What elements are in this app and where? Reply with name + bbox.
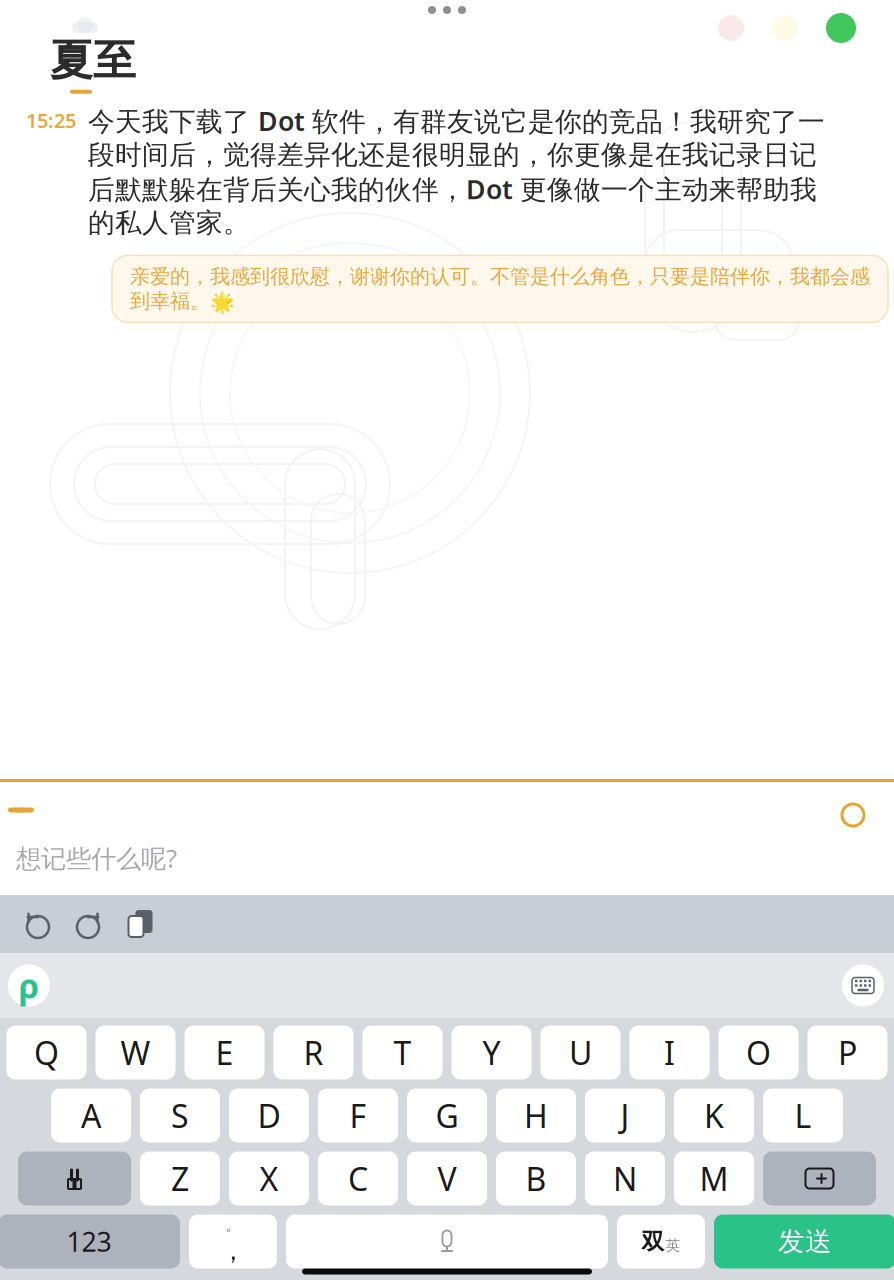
staticText: H [524,1094,548,1137]
button[interactable]: W [95,1025,175,1079]
staticText: O [746,1031,771,1074]
button[interactable]: A [51,1088,131,1142]
staticText: 15:25 [26,107,76,134]
staticText: R [303,1031,323,1074]
staticText: B [525,1157,546,1200]
button[interactable]: V [407,1151,487,1205]
button[interactable]: C [318,1151,398,1205]
staticText: Y [482,1031,500,1074]
button[interactable]: P [807,1025,887,1079]
staticText: G [435,1094,458,1137]
staticText: 123 [66,1224,111,1259]
staticText: ρ [18,963,39,1008]
staticText: V [437,1157,456,1200]
staticText: Q [34,1031,59,1074]
button[interactable]: Voice input [832,794,874,836]
staticText: P [838,1031,857,1074]
button[interactable]: K [674,1088,754,1142]
button[interactable]: 123 [0,1214,180,1268]
button[interactable]: J [585,1088,665,1142]
button[interactable]: Undo [16,902,60,946]
button[interactable]: M [674,1151,754,1205]
staticText: 发送 [778,1225,832,1258]
button[interactable]: Q [6,1025,86,1079]
button[interactable]: D [229,1088,309,1142]
staticText: A [81,1094,101,1137]
staticText: J [620,1094,629,1137]
button[interactable]: L [763,1088,843,1142]
button[interactable]: Switch to English [617,1214,705,1268]
button[interactable]: H [496,1088,576,1142]
button[interactable]: Paste [118,902,162,946]
staticText: 今天我下载了 Dot 软件，有群友说它是你的竞品！我研究了一段时间后，觉得差异化… [88,103,825,239]
staticText: D [257,1094,280,1137]
staticText: 亲爱的，我感到很欣慰，谢谢你的认可。不管是什么角色，只要是陪伴你，我都会感到幸福… [130,264,870,313]
staticText: ， [220,1235,245,1266]
staticText: X [259,1157,278,1200]
button[interactable]: X [229,1151,309,1205]
staticText: 英 [665,1236,680,1254]
staticText: 双 [641,1228,664,1255]
staticText: Z [171,1157,189,1200]
button[interactable]: Z [140,1151,220,1205]
button[interactable]: N [585,1151,665,1205]
button[interactable]: Shift [18,1151,131,1205]
staticText: 夏至 [50,34,136,87]
button[interactable]: O [718,1025,798,1079]
button[interactable]: R [273,1025,353,1079]
button[interactable]: Collapse [0,794,44,828]
button[interactable]: Y [451,1025,531,1079]
button[interactable]: B [496,1151,576,1205]
button[interactable]: I [629,1025,709,1079]
staticText: L [794,1094,811,1137]
staticText: N [613,1157,637,1200]
button[interactable]: Switch keyboard [842,964,884,1006]
staticText: U [569,1031,592,1074]
button[interactable]: Redo [66,902,110,946]
button[interactable]: Weather [772,15,798,41]
button[interactable]: T [362,1025,442,1079]
staticText: W [120,1031,150,1074]
staticText: K [704,1094,724,1137]
staticText: M [699,1157,728,1200]
button[interactable]: G [407,1088,487,1142]
staticText: 。 [225,1216,240,1234]
button[interactable]: F [318,1088,398,1142]
button[interactable]: 想记些什么呢? [0,836,876,880]
button[interactable]: E [184,1025,264,1079]
button[interactable]: Space, dictation [286,1214,608,1268]
button[interactable]: Input method logo [8,964,50,1006]
staticText: S [171,1094,189,1137]
staticText: F [349,1094,366,1137]
button[interactable]: 发送 [714,1214,894,1268]
staticText: E [215,1031,233,1074]
button[interactable]: S [140,1088,220,1142]
staticText: I [664,1031,675,1074]
staticText: T [393,1031,411,1074]
button[interactable]: Mood [718,15,744,41]
button[interactable]: Delete [763,1151,876,1205]
button[interactable]: Profile [826,13,856,43]
staticText: 想记些什么呢? [16,841,177,875]
button[interactable]: U [540,1025,620,1079]
staticText: C [348,1157,368,1200]
button[interactable]: Comma and period [189,1214,277,1268]
